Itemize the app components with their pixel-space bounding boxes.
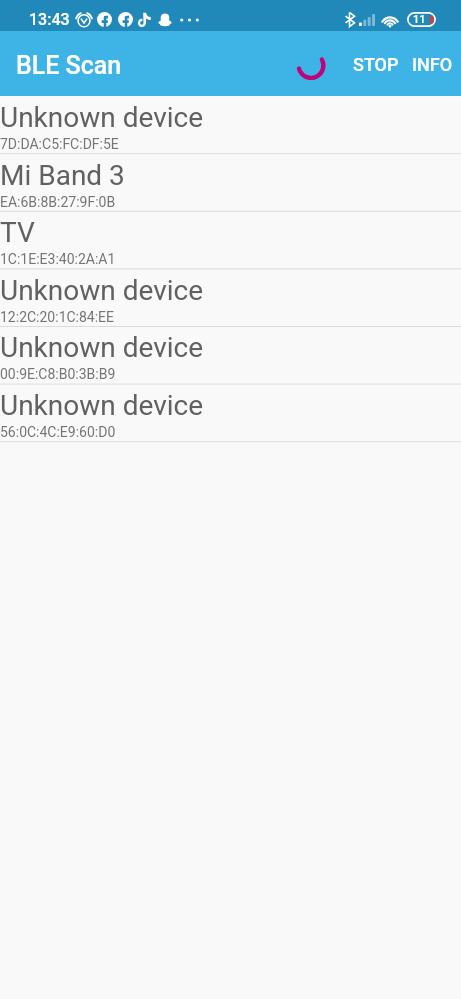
- staticText: Unknown device: [0, 274, 204, 307]
- staticText: 7D:DA:C5:FC:DF:5E: [0, 136, 119, 152]
- button[interactable]: Unknown device: [0, 384, 461, 442]
- staticText: 1C:1E:E3:40:2A:A1: [0, 251, 116, 267]
- staticText: EA:6B:8B:27:9F:0B: [0, 194, 116, 210]
- other: Scanning: [0, 31, 461, 96]
- staticText: 00:9E:C8:B0:3B:B9: [0, 366, 116, 382]
- staticText: Mi Band 3: [0, 159, 125, 192]
- staticText: INFO: [412, 54, 453, 75]
- staticText: 56:0C:4C:E9:60:D0: [0, 424, 116, 440]
- button[interactable]: INFO: [403, 42, 461, 87]
- staticText: 11: [413, 13, 426, 26]
- button[interactable]: TV: [0, 211, 461, 269]
- staticText: Unknown device: [0, 331, 204, 364]
- staticText: Unknown device: [0, 389, 204, 422]
- staticText: 13:43: [29, 10, 70, 29]
- button[interactable]: Unknown device: [0, 96, 461, 154]
- button[interactable]: Mi Band 3: [0, 154, 461, 212]
- staticText: TV: [0, 216, 35, 249]
- button[interactable]: Unknown device: [0, 326, 461, 384]
- button[interactable]: Unknown device: [0, 269, 461, 327]
- staticText: 12:2C:20:1C:84:EE: [0, 309, 115, 325]
- staticText: Unknown device: [0, 101, 204, 134]
- staticText: STOP: [353, 54, 399, 75]
- staticText: BLE Scan: [16, 51, 122, 80]
- button[interactable]: STOP: [342, 42, 403, 87]
